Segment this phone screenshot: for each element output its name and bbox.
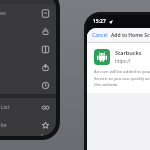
- staticText: An icon will be added to your Home Scree…: [94, 69, 150, 87]
- button[interactable]: Cancel: [87, 29, 113, 42]
- button[interactable]: [0, 4, 56, 22]
- button[interactable]: [0, 40, 56, 58]
- staticText: https://app.starbucks.com/: [115, 58, 150, 64]
- button[interactable]: [0, 22, 56, 40]
- staticText: Cancel: [92, 32, 108, 39]
- staticText: Favourite: [0, 122, 7, 129]
- staticText: Add to List: [0, 104, 10, 111]
- staticText: 15:27: [93, 18, 106, 25]
- staticText: Add to Home Screen: [111, 32, 150, 39]
- staticText: Starbucks: [115, 49, 142, 56]
- button[interactable]: Favourite: [0, 116, 56, 134]
- button[interactable]: [0, 76, 56, 94]
- button[interactable]: [0, 134, 56, 136]
- button[interactable]: Add to List: [0, 98, 56, 116]
- button[interactable]: Share: [0, 58, 56, 76]
